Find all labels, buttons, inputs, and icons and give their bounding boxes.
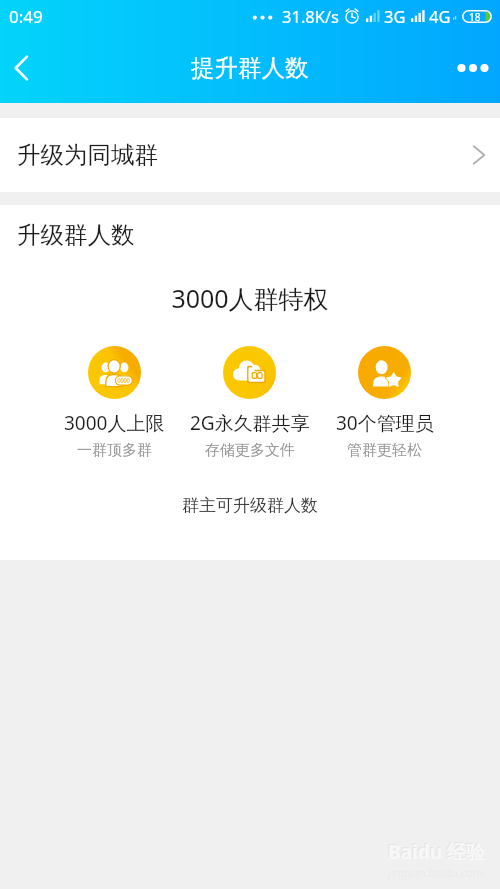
staticText: Baidu 经验 (387, 838, 484, 864)
staticText: 3000人上限 (64, 410, 165, 436)
staticText: 管群更轻松 (347, 441, 422, 460)
staticText: 3G (384, 5, 406, 27)
staticText: 30个管理员 (336, 410, 434, 436)
staticText: 存储更多文件 (205, 441, 295, 460)
staticText: 升级为同城群 (17, 140, 158, 170)
button[interactable]: More options (446, 32, 500, 103)
staticText: 31.8K/s (282, 5, 339, 27)
staticText: 2G永久群共享 (190, 410, 310, 436)
staticText: 3000人群特权 (0, 281, 500, 315)
staticText: Baidu 经验 (388, 839, 485, 865)
staticText: 升级群人数 (17, 220, 135, 250)
staticText: 4G (429, 5, 451, 27)
button[interactable]: 升级为同城群 (0, 118, 500, 192)
staticText: 一群顶多群 (77, 441, 152, 460)
staticText: 0:49 (9, 5, 43, 28)
staticText: 提升群人数 (191, 53, 309, 83)
button[interactable]: Back (0, 32, 41, 103)
staticText: 群主可升级群人数 (0, 495, 500, 516)
staticText: 18 (469, 10, 481, 23)
